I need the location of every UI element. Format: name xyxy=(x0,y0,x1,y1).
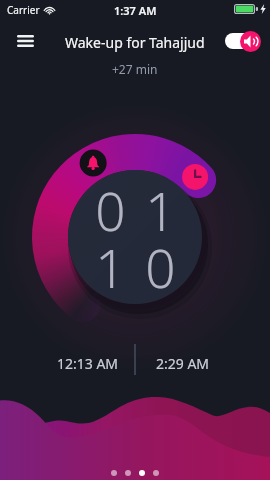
button[interactable]: Menu xyxy=(10,26,40,56)
button[interactable]: 2:29 AM xyxy=(140,352,225,374)
staticText: 1:37 AM xyxy=(114,3,157,18)
staticText: 1 xyxy=(145,174,176,246)
button[interactable]: Page 2 xyxy=(125,470,131,476)
staticText: 0 xyxy=(145,231,176,303)
staticText: Wake-up for Tahajjud xyxy=(65,33,205,52)
staticText: +27 min xyxy=(112,61,158,77)
button[interactable]: Page 1 xyxy=(111,470,117,476)
staticText: 12:13 AM xyxy=(57,354,119,373)
staticText: 2:29 AM xyxy=(156,354,210,373)
staticText: 1 xyxy=(95,231,126,303)
staticText: Carrier xyxy=(7,3,40,17)
button[interactable]: Page 4 xyxy=(153,470,159,476)
staticText: 0 xyxy=(95,174,126,246)
button[interactable]: Page 3 xyxy=(139,470,145,476)
button[interactable]: Alarm sound on xyxy=(222,29,261,53)
button[interactable]: 12:13 AM xyxy=(45,352,130,374)
